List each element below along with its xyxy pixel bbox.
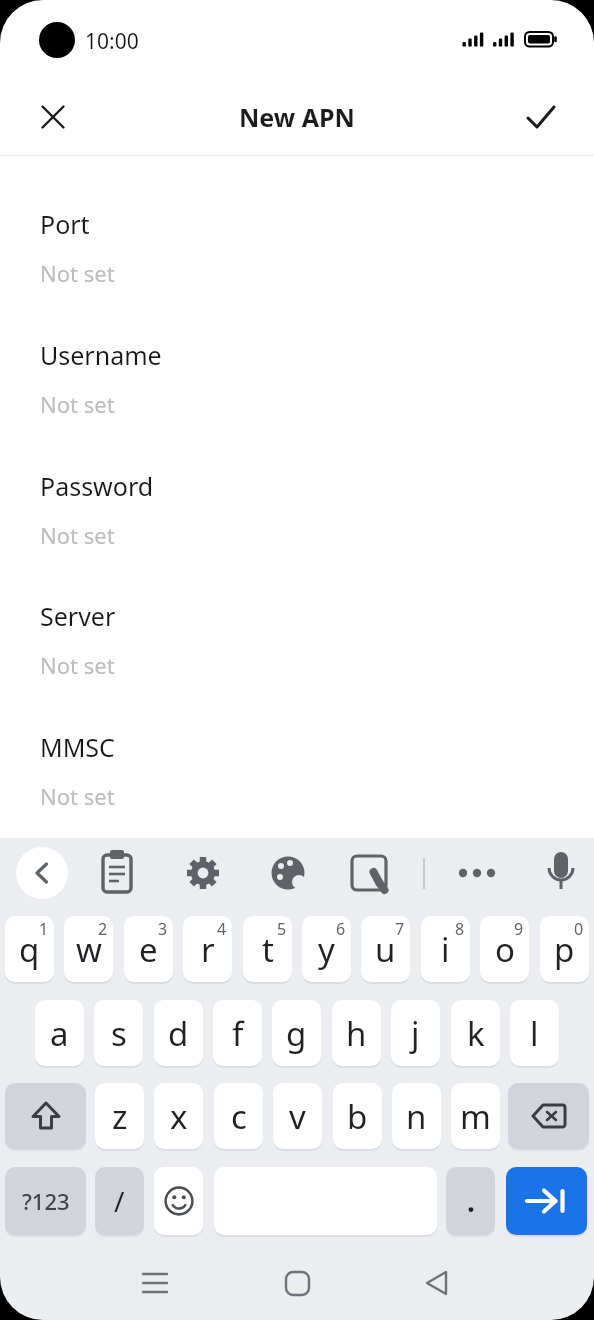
staticText: 4 bbox=[217, 918, 227, 940]
staticText: e bbox=[139, 927, 158, 972]
button[interactable]: o bbox=[480, 916, 529, 982]
button[interactable]: Server bbox=[40, 599, 540, 680]
staticText: Not set bbox=[40, 781, 115, 811]
staticText: k bbox=[467, 1011, 485, 1056]
staticText: 0 bbox=[574, 918, 584, 940]
staticText: 3 bbox=[158, 918, 168, 940]
button[interactable]: Port bbox=[40, 207, 540, 288]
button[interactable]: w bbox=[64, 916, 113, 982]
staticText: l bbox=[530, 1011, 539, 1056]
staticText: b bbox=[347, 1094, 368, 1139]
staticText: y bbox=[318, 927, 335, 972]
staticText: a bbox=[50, 1011, 69, 1056]
button[interactable]: b bbox=[333, 1083, 382, 1149]
button[interactable]: l bbox=[510, 1000, 559, 1066]
staticText: 7 bbox=[395, 918, 405, 940]
button[interactable]: t bbox=[243, 916, 292, 982]
staticText: Not set bbox=[40, 520, 115, 550]
button[interactable]: g bbox=[272, 1000, 321, 1066]
staticText: New APN bbox=[239, 100, 355, 134]
button[interactable]: q bbox=[5, 916, 54, 982]
staticText: v bbox=[289, 1094, 306, 1139]
staticText: Server bbox=[40, 599, 116, 633]
button[interactable] bbox=[512, 88, 570, 146]
button[interactable] bbox=[273, 1259, 321, 1307]
staticText: h bbox=[346, 1011, 367, 1056]
staticText: 1 bbox=[39, 918, 49, 940]
staticText: f bbox=[232, 1011, 244, 1056]
button[interactable] bbox=[508, 1083, 589, 1149]
staticText: n bbox=[406, 1094, 427, 1139]
staticText: Username bbox=[40, 338, 162, 372]
staticText: 2 bbox=[98, 918, 108, 940]
button[interactable]: x bbox=[154, 1083, 203, 1149]
staticText: o bbox=[495, 927, 515, 972]
staticText: Not set bbox=[40, 650, 115, 680]
staticText: i bbox=[441, 927, 450, 972]
staticText: s bbox=[111, 1011, 127, 1056]
button[interactable]: y bbox=[302, 916, 351, 982]
button[interactable]: s bbox=[94, 1000, 143, 1066]
staticText: r bbox=[201, 927, 215, 972]
button[interactable]: Password bbox=[40, 469, 540, 550]
button[interactable]: d bbox=[154, 1000, 203, 1066]
button[interactable]: . bbox=[446, 1167, 495, 1235]
button[interactable] bbox=[506, 1167, 587, 1235]
button[interactable]: n bbox=[392, 1083, 441, 1149]
button[interactable]: i bbox=[421, 916, 470, 982]
staticText: / bbox=[114, 1182, 125, 1220]
staticText: u bbox=[375, 927, 396, 972]
button[interactable]: v bbox=[273, 1083, 322, 1149]
staticText: q bbox=[19, 927, 40, 972]
button[interactable] bbox=[16, 847, 68, 899]
button[interactable]: e bbox=[124, 916, 173, 982]
button[interactable]: / bbox=[95, 1167, 144, 1235]
staticText: x bbox=[170, 1094, 188, 1139]
button[interactable]: r bbox=[183, 916, 232, 982]
button[interactable]: m bbox=[451, 1083, 500, 1149]
staticText: Password bbox=[40, 469, 154, 503]
button[interactable]: u bbox=[361, 916, 410, 982]
staticText: g bbox=[286, 1011, 307, 1056]
button[interactable] bbox=[131, 1259, 179, 1307]
staticText: w bbox=[76, 927, 102, 972]
button[interactable]: k bbox=[451, 1000, 500, 1066]
staticText: 10:00 bbox=[85, 27, 139, 56]
staticText: Port bbox=[40, 207, 90, 241]
button[interactable] bbox=[24, 88, 82, 146]
button[interactable]: p bbox=[540, 916, 589, 982]
staticText: c bbox=[231, 1094, 247, 1139]
staticText: . bbox=[467, 1182, 475, 1220]
button[interactable]: MMSC bbox=[40, 730, 540, 811]
button[interactable]: f bbox=[213, 1000, 262, 1066]
staticText: j bbox=[411, 1011, 420, 1056]
button[interactable]: c bbox=[214, 1083, 263, 1149]
staticText: t bbox=[262, 927, 274, 972]
button[interactable]: Username bbox=[40, 338, 540, 419]
staticText: p bbox=[554, 927, 575, 972]
button[interactable]: j bbox=[391, 1000, 440, 1066]
button[interactable]: h bbox=[332, 1000, 381, 1066]
button[interactable] bbox=[413, 1259, 461, 1307]
staticText: d bbox=[168, 1011, 189, 1056]
button[interactable] bbox=[5, 1083, 86, 1149]
button[interactable]: z bbox=[95, 1083, 144, 1149]
staticText: 5 bbox=[277, 918, 287, 940]
staticText: z bbox=[112, 1094, 128, 1139]
button[interactable]: a bbox=[35, 1000, 84, 1066]
button[interactable] bbox=[154, 1167, 203, 1235]
staticText: 6 bbox=[336, 918, 346, 940]
staticText: 9 bbox=[514, 918, 524, 940]
staticText: MMSC bbox=[40, 730, 115, 764]
staticText: Not set bbox=[40, 258, 115, 288]
staticText: Not set bbox=[40, 389, 115, 419]
staticText: m bbox=[460, 1094, 491, 1139]
staticText: 8 bbox=[455, 918, 465, 940]
button[interactable]: ?123 bbox=[5, 1167, 86, 1235]
staticText: ?123 bbox=[22, 1186, 70, 1216]
